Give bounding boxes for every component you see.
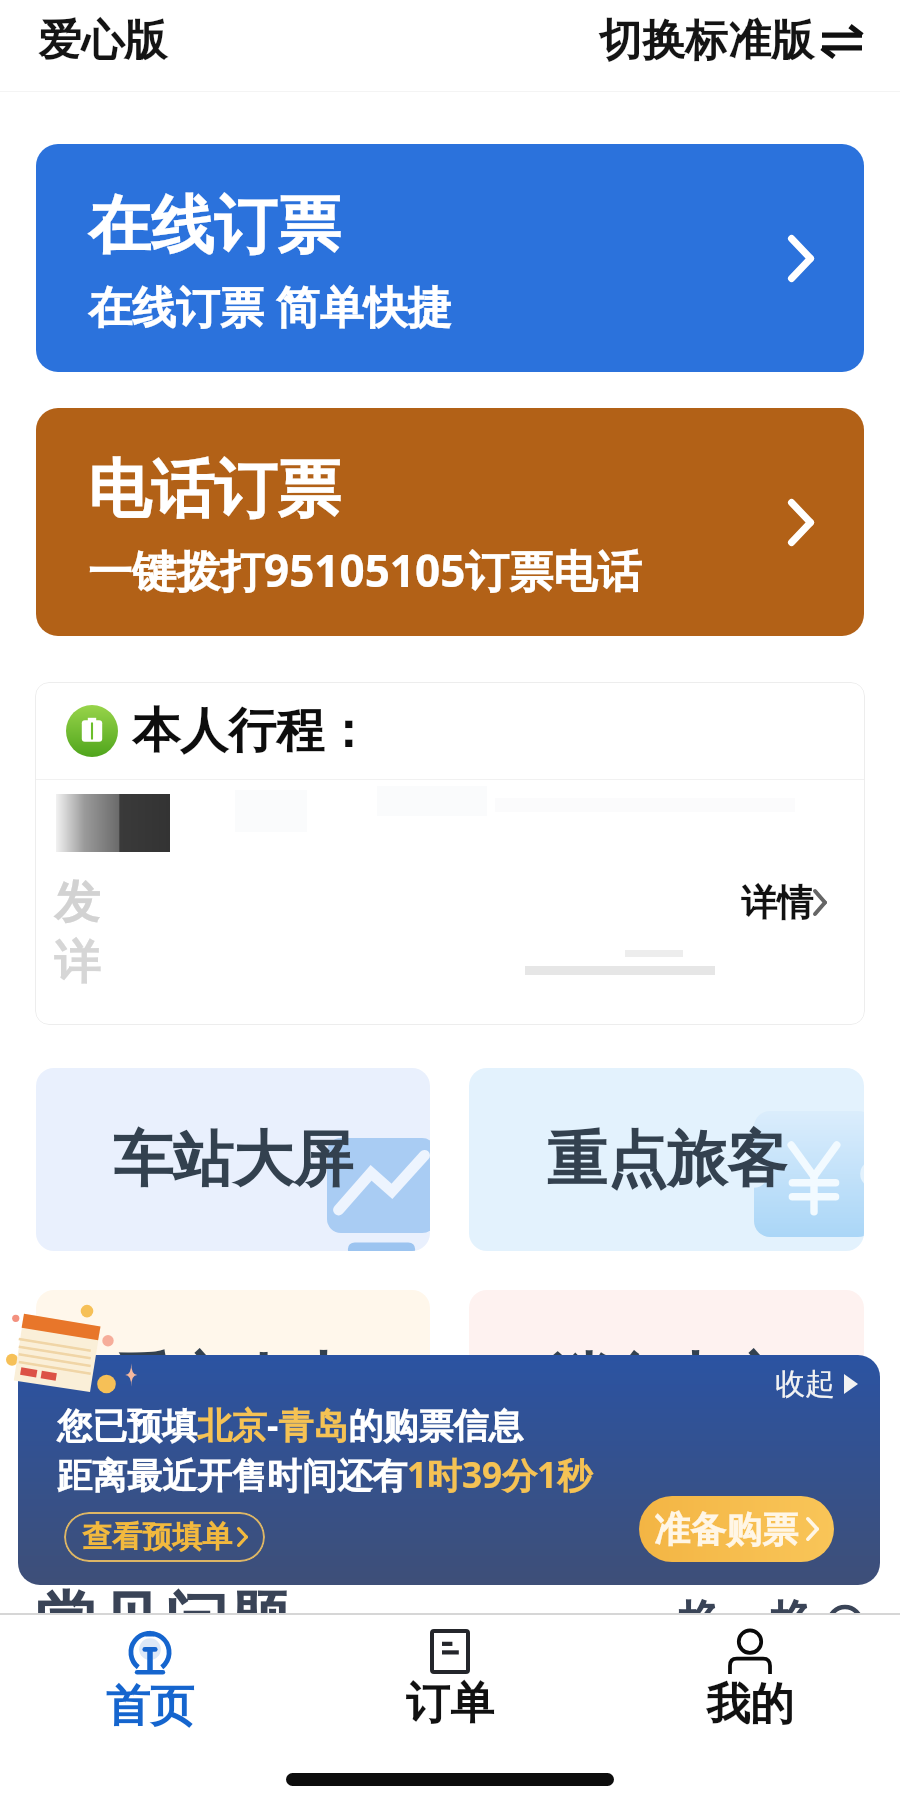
staticText: 车站大屏 bbox=[113, 1122, 353, 1198]
staticText: 常见问题 bbox=[36, 1582, 292, 1663]
other: 在线订票 bbox=[788, 235, 814, 282]
staticText: 详情 bbox=[741, 880, 813, 925]
button[interactable]: 重点旅客 bbox=[469, 1068, 864, 1251]
staticText: 爱心版 bbox=[38, 14, 167, 68]
staticText: 订单 bbox=[406, 1676, 494, 1731]
button[interactable]: 消息中心 bbox=[469, 1290, 864, 1473]
button[interactable]: 电话订票 bbox=[36, 408, 864, 636]
staticText: 收起 bbox=[775, 1365, 835, 1403]
button[interactable]: 查看预填单 bbox=[64, 1512, 265, 1562]
staticText: 重点旅客 bbox=[547, 1122, 787, 1198]
staticText: 爱心人士 bbox=[113, 1344, 353, 1420]
button[interactable]: 首页 bbox=[0, 1625, 300, 1738]
staticText: 发 bbox=[54, 874, 100, 932]
staticText: 消息中心 bbox=[547, 1344, 787, 1420]
staticText: 准备购票 bbox=[654, 1507, 798, 1552]
button[interactable]: 准备购票 bbox=[639, 1496, 834, 1562]
staticText: 切换标准版 bbox=[599, 14, 814, 68]
button[interactable]: 我的 bbox=[600, 1625, 900, 1736]
button[interactable]: 在线订票 bbox=[36, 144, 864, 372]
staticText: 您已预填北京-青岛的购票信息 bbox=[57, 1401, 524, 1449]
other: 电话订票 bbox=[788, 499, 814, 546]
button[interactable]: 收起 bbox=[771, 1361, 862, 1407]
button[interactable]: 详情 bbox=[737, 876, 831, 929]
staticText: 首页 bbox=[106, 1679, 194, 1734]
other: 切换标准版 bbox=[822, 24, 862, 58]
staticText: 详 bbox=[54, 934, 100, 992]
staticText: 我的 bbox=[706, 1677, 794, 1732]
staticText: 距离最近开售时间还有1时39分1秒 bbox=[57, 1451, 593, 1499]
staticText: 电话订票 bbox=[88, 450, 340, 529]
staticText: 本人行程： bbox=[132, 701, 372, 761]
button[interactable]: 切换标准版 bbox=[595, 10, 866, 72]
button[interactable]: 爱心人士 bbox=[36, 1290, 430, 1473]
staticText: 查看预填单 bbox=[82, 1518, 232, 1556]
staticText: 换一换 bbox=[678, 1594, 816, 1652]
button[interactable]: 订单 bbox=[300, 1625, 600, 1735]
staticText: 一键拨打95105105订票电话 bbox=[88, 540, 642, 600]
staticText: 在线订票 bbox=[88, 186, 340, 265]
staticText: 在线订票 简单快捷 bbox=[88, 276, 452, 336]
button[interactable]: 车站大屏 bbox=[36, 1068, 430, 1251]
